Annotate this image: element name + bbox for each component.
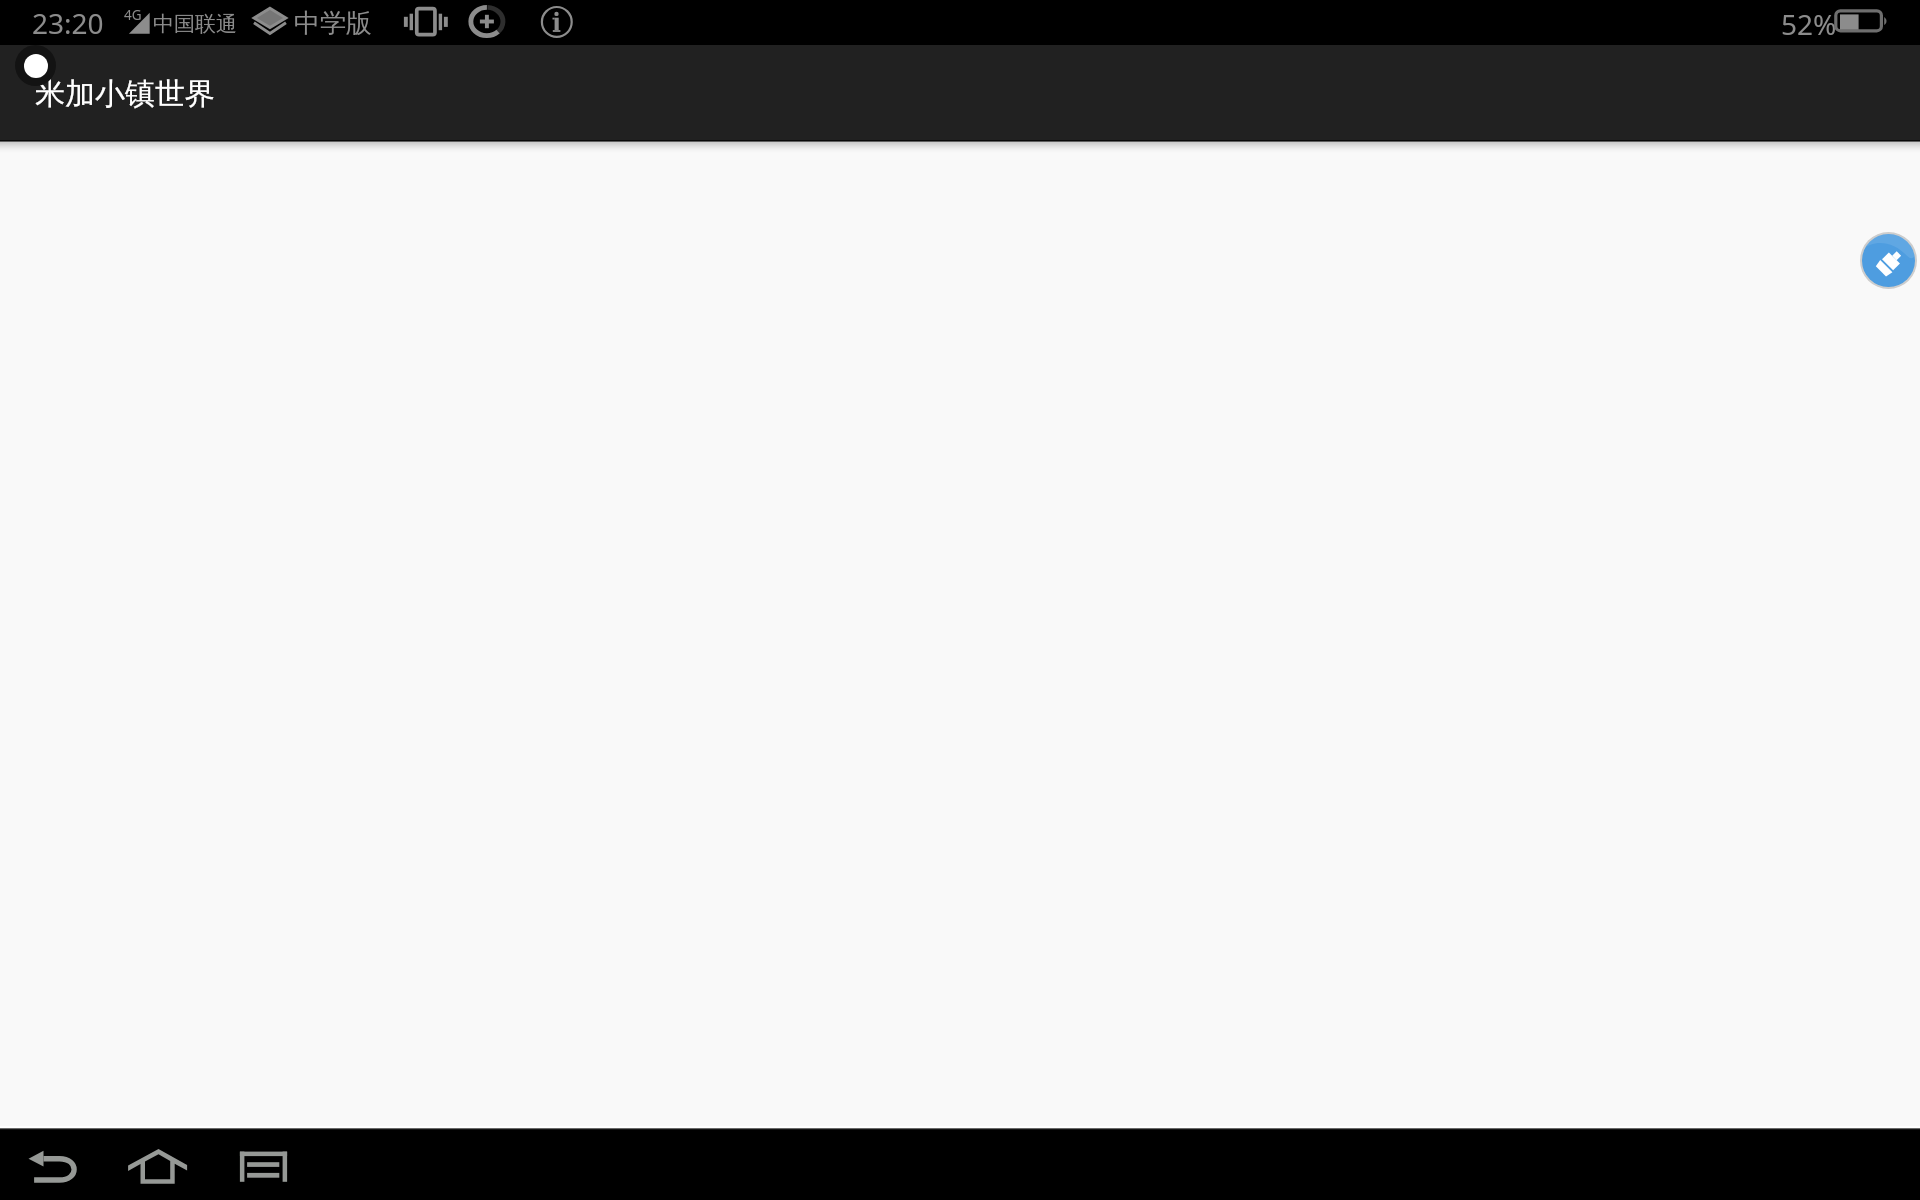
staticText: 中学版 — [294, 7, 372, 40]
button[interactable]: Clean — [1860, 232, 1917, 289]
button[interactable]: Recents — [230, 1140, 298, 1192]
staticText: 中国联通 — [153, 11, 237, 37]
staticText: 米加小镇世界 — [35, 75, 215, 113]
staticText: 4G — [124, 6, 142, 24]
button[interactable]: Home — [118, 1140, 198, 1192]
staticText: 52% — [1781, 5, 1837, 43]
button[interactable]: Back — [18, 1140, 86, 1192]
button[interactable]: Assistive touch — [15, 45, 56, 86]
staticText: 23:20 — [32, 4, 104, 42]
